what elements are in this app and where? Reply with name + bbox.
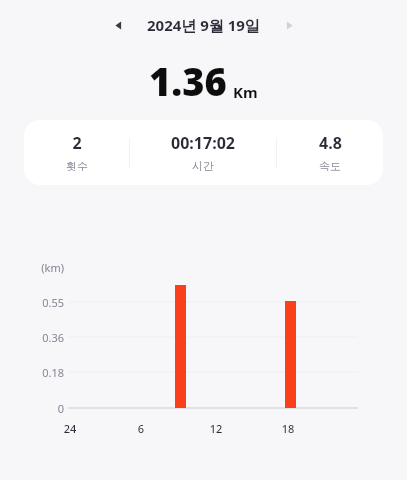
staticText: 횟수 xyxy=(66,159,88,173)
staticText: 속도 xyxy=(319,159,341,173)
staticText: (km) xyxy=(26,260,64,275)
staticText: 0.55 xyxy=(26,295,64,310)
button[interactable]: 2024년 9월 19일 xyxy=(147,15,260,35)
staticText: 시간 xyxy=(192,159,214,173)
staticText: 2 xyxy=(72,132,82,154)
staticText: 6 xyxy=(125,421,157,436)
staticText: Km xyxy=(233,82,258,102)
button[interactable]: 4.8 xyxy=(277,132,383,173)
button[interactable]: 2 xyxy=(24,132,129,173)
button[interactable]: 00:17:02 xyxy=(130,132,276,173)
staticText: 2024년 9월 19일 xyxy=(147,15,260,35)
staticText: 24 xyxy=(54,421,86,436)
staticText: 0.36 xyxy=(26,330,64,345)
staticText: 12 xyxy=(200,421,232,436)
staticText: 4.8 xyxy=(319,132,342,154)
staticText: 00:17:02 xyxy=(171,132,235,154)
button[interactable]: Next day xyxy=(278,14,300,36)
button[interactable]: 2 xyxy=(24,120,383,185)
staticText: 1.36 xyxy=(149,55,227,107)
staticText: 18 xyxy=(272,421,304,436)
staticText: 0.18 xyxy=(26,365,64,380)
button[interactable]: Previous day xyxy=(107,14,129,36)
staticText: 0 xyxy=(26,401,64,416)
